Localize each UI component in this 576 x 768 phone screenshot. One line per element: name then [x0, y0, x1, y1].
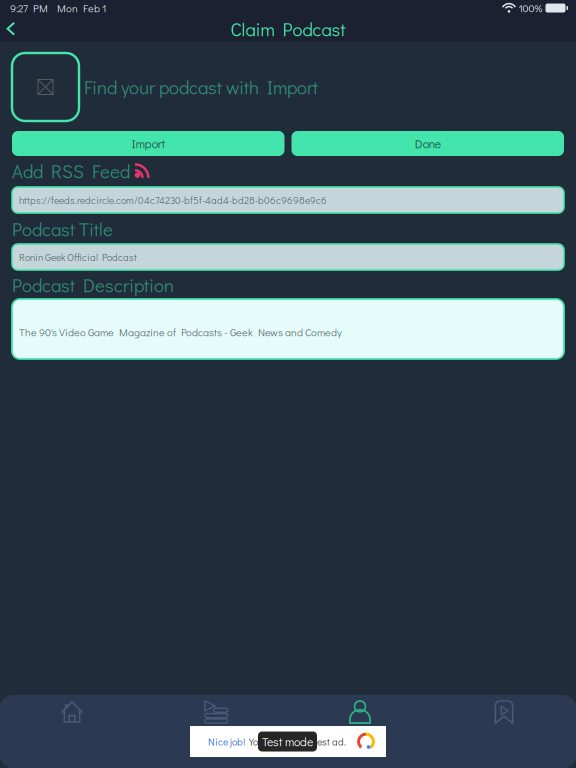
staticText: You're seeing a test ad.	[245, 735, 346, 748]
staticText: Done	[415, 136, 441, 151]
staticText: 9:27 PM	[10, 1, 48, 15]
button[interactable]: Import	[12, 131, 284, 156]
staticText: Nice job!	[208, 735, 245, 748]
staticText: 100%	[518, 1, 542, 15]
staticText: Add RSS Feed	[12, 159, 130, 183]
staticText: The 90's Video Game Magazine of Podcasts…	[19, 325, 342, 339]
button[interactable]: Home	[0, 697, 144, 727]
staticText: Claim Podcast	[230, 17, 345, 41]
button[interactable]: Profile	[288, 697, 432, 727]
staticText: Mon Feb 1	[48, 1, 106, 15]
staticText: Ronin Geek Official Podcast	[19, 250, 137, 263]
image	[37, 79, 53, 95]
button[interactable]: Episodes	[144, 697, 288, 727]
staticText: Find your podcast with Import	[84, 75, 318, 99]
staticText: Test mode	[262, 734, 313, 749]
staticText: Podcast Description	[12, 273, 174, 297]
button[interactable]: Done	[291, 131, 564, 156]
staticText: https://feeds.redcircle.com/04c74230-bf5…	[19, 193, 327, 206]
button[interactable]: Back	[0, 16, 26, 41]
button[interactable]: Saved	[432, 697, 576, 727]
staticText: Import	[132, 136, 165, 151]
staticText: Podcast Title	[12, 217, 113, 241]
